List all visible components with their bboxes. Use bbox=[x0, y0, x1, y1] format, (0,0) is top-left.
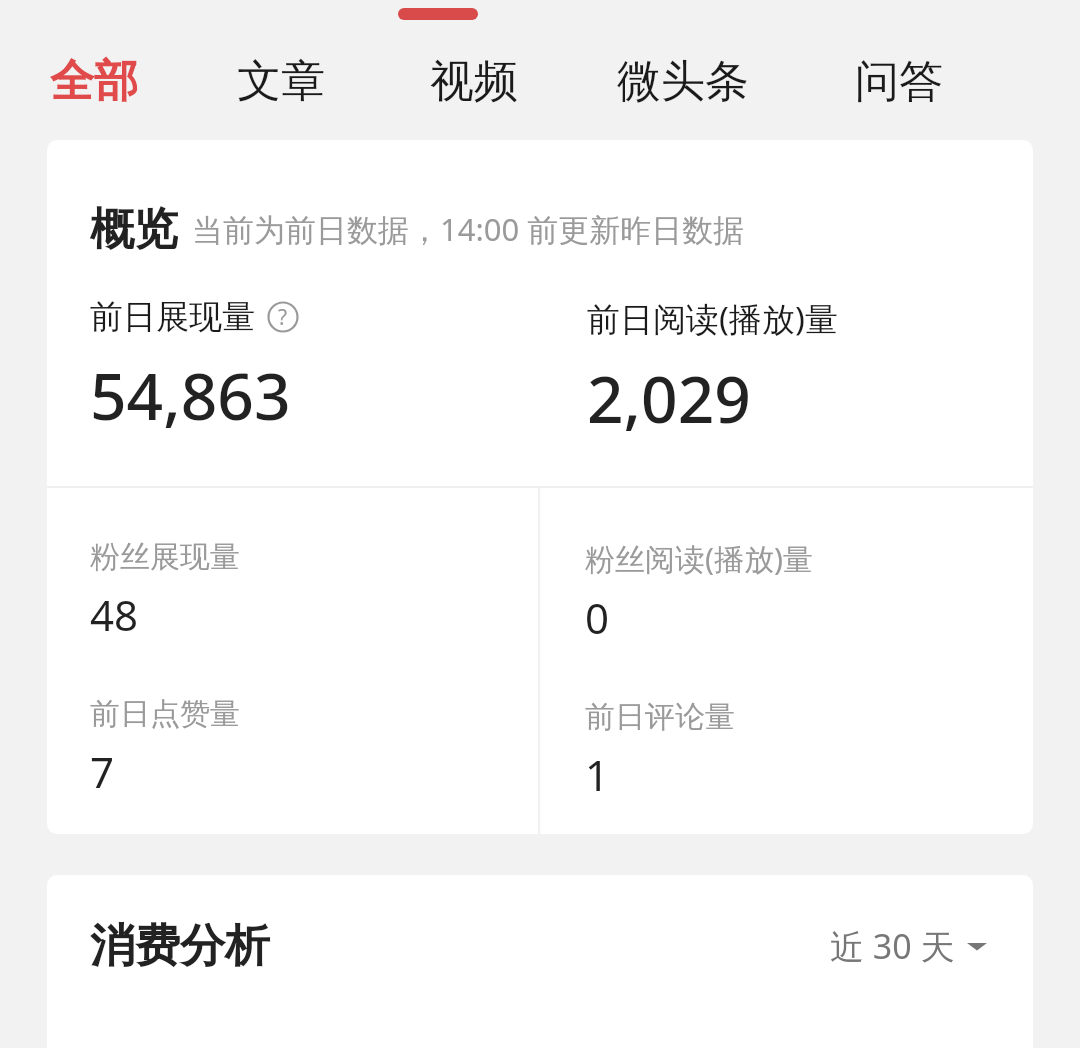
staticText: 粉丝展现量 bbox=[90, 538, 240, 576]
staticText: 粉丝阅读(播放)量 bbox=[585, 538, 813, 579]
staticText: 当前为前日数据，14:00 前更新昨日数据 bbox=[192, 208, 745, 250]
staticText: 前日展现量 bbox=[90, 296, 255, 338]
button[interactable]: 全部 bbox=[48, 52, 140, 111]
button[interactable]: 视频 bbox=[428, 52, 520, 111]
staticText: 微头条 bbox=[617, 54, 749, 109]
staticText: ? bbox=[278, 303, 288, 332]
staticText: 2,029 bbox=[587, 355, 751, 442]
button[interactable]: 微头条 bbox=[615, 52, 751, 111]
button[interactable]: 近 30 天 bbox=[824, 917, 993, 975]
staticText: 1 bbox=[585, 746, 610, 803]
staticText: 前日阅读(播放)量 bbox=[587, 296, 838, 341]
staticText: 0 bbox=[585, 589, 610, 646]
staticText: 问答 bbox=[855, 54, 943, 109]
staticText: 文章 bbox=[237, 54, 325, 109]
staticText: 全部 bbox=[50, 54, 138, 109]
button[interactable]: 帮助说明 bbox=[267, 301, 299, 333]
staticText: 消费分析 bbox=[90, 918, 270, 975]
staticText: 概览 bbox=[90, 202, 178, 254]
staticText: 视频 bbox=[430, 54, 518, 109]
staticText: 前日点赞量 bbox=[90, 695, 240, 733]
staticText: 54,863 bbox=[90, 352, 291, 439]
button[interactable]: 问答 bbox=[853, 52, 945, 111]
staticText: 48 bbox=[90, 586, 139, 643]
button[interactable]: 文章 bbox=[235, 52, 327, 111]
button[interactable]: 概览 bbox=[47, 140, 1033, 834]
staticText: 近 30 天 bbox=[830, 923, 955, 969]
staticText: 7 bbox=[90, 743, 115, 800]
staticText: 前日评论量 bbox=[585, 698, 735, 736]
